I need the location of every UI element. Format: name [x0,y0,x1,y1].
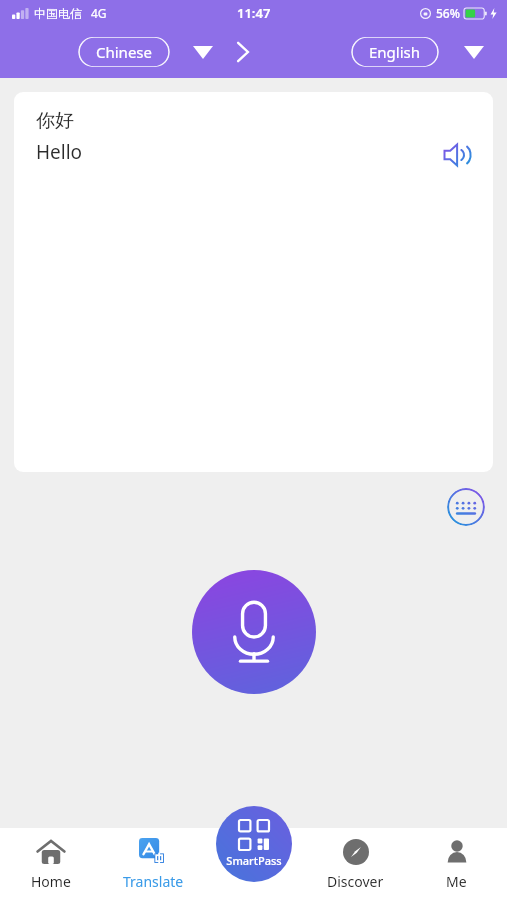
button[interactable]: Play pronunciation [439,136,477,174]
button[interactable]: Me [406,828,507,900]
button[interactable]: Chinese [78,37,170,67]
staticText: 11:47 [237,4,271,22]
staticText: 中国电信 [34,6,82,21]
staticText: 4G [91,5,107,21]
button[interactable]: Swap languages [226,35,260,69]
button[interactable]: 你好 [14,92,493,472]
staticText: Home [31,872,71,891]
staticText: Translate [123,872,184,891]
button[interactable]: SmartPass [216,806,292,882]
staticText: 你好 [36,109,74,133]
staticText: Me [446,872,467,891]
staticText: 56% [436,5,460,21]
staticText: English [369,42,421,62]
button[interactable]: Keyboard input [447,488,485,526]
button[interactable]: Start voice translation [192,570,316,694]
button[interactable]: Target language options [457,35,491,69]
button[interactable]: Translate [102,828,204,900]
staticText: Chinese [96,42,152,62]
staticText: Hello [36,139,83,165]
button[interactable]: Source language options [186,35,220,69]
button[interactable]: English [351,37,439,67]
button[interactable]: Home [0,828,102,900]
button[interactable]: Discover [305,828,406,900]
staticText: Discover [327,872,384,891]
staticText: SmartPass [226,853,282,868]
